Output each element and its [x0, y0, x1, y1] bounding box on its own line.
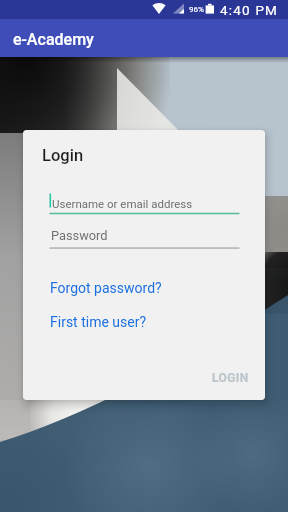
- staticText: Password: [51, 228, 108, 243]
- staticText: 4:40 PM: [220, 2, 279, 18]
- staticText: e-Academy: [13, 30, 94, 49]
- button[interactable]: LOGIN: [204, 364, 264, 392]
- staticText: Username or email address: [52, 197, 193, 210]
- staticText: Forgot password?: [50, 280, 162, 296]
- staticText: LOGIN: [212, 371, 249, 385]
- button[interactable]: First time user?: [43, 308, 140, 332]
- button[interactable]: Forgot password?: [43, 274, 155, 298]
- button[interactable]: [49, 190, 239, 216]
- staticText: Login: [42, 146, 84, 165]
- staticText: 96%: [189, 5, 204, 14]
- button[interactable]: [49, 225, 239, 251]
- staticText: First time user?: [50, 314, 147, 330]
